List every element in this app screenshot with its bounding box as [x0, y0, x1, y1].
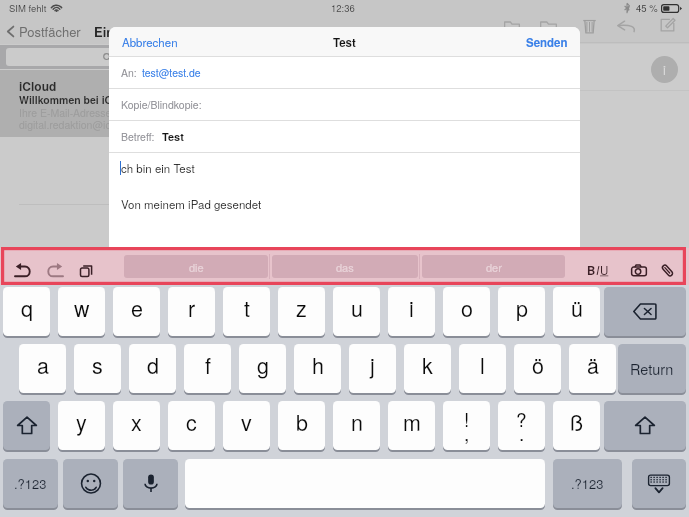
staticText: Bearbeiten — [162, 22, 225, 41]
button[interactable]: Backspace — [604, 287, 686, 336]
button[interactable]: .?123 — [3, 459, 58, 508]
button[interactable]: Delete — [578, 13, 601, 39]
button[interactable]: f — [184, 344, 231, 393]
button[interactable]: r — [168, 287, 215, 336]
button[interactable]: Move — [535, 15, 562, 35]
staticText: n — [351, 406, 363, 437]
staticText: i — [663, 60, 666, 79]
button[interactable]: Redo — [42, 261, 68, 279]
staticText: ? — [516, 405, 527, 432]
button[interactable]: Shift — [3, 401, 50, 450]
button[interactable]: ö — [514, 344, 561, 393]
button[interactable]: d — [129, 344, 176, 393]
staticText: x — [131, 406, 142, 437]
button[interactable]: h — [294, 344, 341, 393]
staticText: k — [422, 349, 433, 380]
button[interactable]: Emoji — [63, 459, 118, 508]
button[interactable]: i — [388, 287, 435, 336]
staticText: r — [188, 292, 196, 323]
button[interactable]: Betreff: — [109, 121, 580, 152]
staticText: ö — [532, 349, 544, 380]
staticText: p — [516, 292, 528, 323]
button[interactable]: An: — [109, 57, 580, 88]
staticText: w — [74, 292, 90, 323]
button[interactable]: o — [443, 287, 490, 336]
button[interactable]: m — [388, 401, 435, 450]
button[interactable]: q — [3, 287, 50, 336]
staticText: e — [131, 292, 143, 323]
staticText: Postfächer — [19, 22, 81, 41]
button[interactable]: das — [272, 255, 418, 278]
staticText: o — [461, 292, 473, 323]
staticText: l — [480, 349, 485, 380]
staticText: ü — [571, 292, 583, 323]
button[interactable]: B — [585, 262, 611, 278]
button[interactable]: g — [239, 344, 286, 393]
staticText: q — [21, 292, 33, 323]
button[interactable]: Senden — [522, 29, 572, 55]
button[interactable]: x — [113, 401, 160, 450]
button[interactable]: Archive — [499, 15, 525, 35]
button[interactable]: w — [58, 287, 105, 336]
staticText: t — [244, 292, 250, 323]
button[interactable]: ß — [553, 401, 600, 450]
staticText: c — [186, 406, 197, 437]
staticText: a — [37, 349, 49, 380]
button[interactable]: die — [124, 255, 268, 278]
staticText: B — [587, 262, 596, 278]
staticText: digital.redaktion@icloud — [19, 117, 131, 132]
button[interactable]: j — [349, 344, 396, 393]
button[interactable]: p — [498, 287, 545, 336]
staticText: d — [147, 349, 159, 380]
button[interactable]: Hide keyboard — [632, 459, 686, 508]
button[interactable]: Sender avatar — [651, 56, 678, 83]
staticText: .?123 — [571, 474, 604, 493]
button[interactable]: ü — [553, 287, 600, 336]
button[interactable]: t — [223, 287, 270, 336]
staticText: Eingang — [94, 22, 146, 41]
button[interactable]: Attach file — [655, 260, 679, 280]
button[interactable]: Dictate — [123, 459, 178, 508]
button[interactable]: Return — [618, 344, 686, 393]
button[interactable]: Shift — [604, 401, 686, 450]
button[interactable]: s — [74, 344, 121, 393]
button[interactable]: Undo — [10, 261, 36, 279]
button[interactable]: l — [459, 344, 506, 393]
staticText: ß — [570, 406, 584, 437]
button[interactable]: y — [58, 401, 105, 450]
button[interactable]: iCloud — [0, 70, 250, 137]
staticText: i — [409, 292, 414, 323]
staticText: m — [403, 406, 421, 437]
staticText: f — [205, 349, 211, 380]
button[interactable]: ä — [569, 344, 616, 393]
button[interactable]: k — [404, 344, 451, 393]
staticText: , — [464, 419, 470, 446]
button[interactable]: .?123 — [553, 459, 622, 508]
staticText: Test — [162, 129, 184, 145]
button[interactable]: b — [278, 401, 325, 450]
staticText: .?123 — [14, 474, 47, 493]
button[interactable]: Compose — [655, 13, 680, 37]
button[interactable]: a — [19, 344, 66, 393]
button[interactable]: Kopie/Blindkopie: — [109, 89, 580, 120]
button[interactable]: Copy — [74, 260, 98, 280]
button[interactable]: Reply — [612, 15, 641, 37]
staticText: ! — [464, 405, 470, 432]
button[interactable]: Abbrechen — [118, 29, 182, 55]
button[interactable]: ! — [443, 401, 490, 450]
button[interactable]: v — [223, 401, 270, 450]
button[interactable]: u — [333, 287, 380, 336]
button[interactable]: e — [113, 287, 160, 336]
button[interactable]: c — [168, 401, 215, 450]
button[interactable]: Suchen — [6, 48, 244, 66]
staticText: iCloud — [19, 77, 57, 94]
staticText: Senden — [526, 34, 568, 50]
button[interactable]: n — [333, 401, 380, 450]
staticText: g — [257, 349, 269, 380]
button[interactable]: z — [278, 287, 325, 336]
staticText: y — [76, 406, 87, 437]
button[interactable]: der — [422, 255, 565, 278]
button[interactable]: ? — [498, 401, 545, 450]
button[interactable]: Camera — [627, 261, 651, 279]
